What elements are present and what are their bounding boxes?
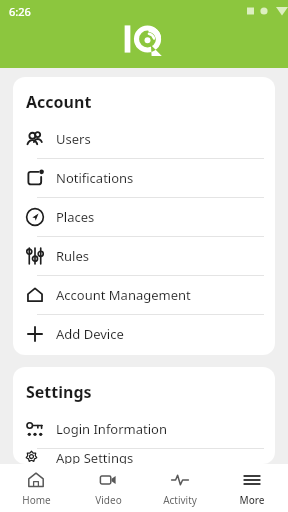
staticText: Settings	[26, 381, 92, 403]
button[interactable]: Account Management	[13, 276, 275, 315]
staticText: Login Information	[56, 420, 167, 438]
button[interactable]: Users	[13, 120, 275, 159]
button[interactable]: Login Information	[13, 410, 275, 449]
staticText: 6:26	[9, 4, 31, 19]
button[interactable]: Add Device	[13, 315, 275, 353]
button[interactable]: App Settings	[13, 449, 275, 464]
staticText: Add Device	[56, 325, 124, 343]
button[interactable]: More	[216, 464, 288, 512]
button[interactable]: Places	[13, 198, 275, 237]
staticText: Account	[26, 91, 92, 113]
button[interactable]: Rules	[13, 237, 275, 276]
staticText: More	[239, 493, 265, 507]
staticText: Places	[56, 208, 95, 226]
staticText: Account Management	[56, 286, 191, 304]
button[interactable]: Home	[0, 464, 72, 512]
button[interactable]: Video	[72, 464, 144, 512]
staticText: Activity	[163, 493, 197, 507]
staticText: Video	[95, 493, 122, 507]
button[interactable]: Activity	[144, 464, 216, 512]
staticText: Notifications	[56, 169, 134, 187]
staticText: Users	[56, 130, 91, 148]
staticText: Home	[22, 493, 51, 507]
staticText: App Settings	[56, 449, 134, 464]
button[interactable]: Notifications	[13, 159, 275, 198]
staticText: Rules	[56, 247, 90, 265]
